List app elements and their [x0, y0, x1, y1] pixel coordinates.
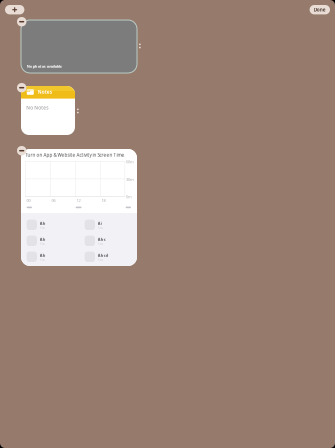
staticText: 1m — [98, 241, 103, 246]
staticText: Ab — [40, 236, 46, 242]
staticText: Ab — [40, 220, 46, 226]
button[interactable]: App usage — [85, 236, 131, 246]
button[interactable]: Add Widget — [5, 5, 24, 14]
staticText: 06 — [51, 198, 55, 203]
button[interactable]: App usage — [85, 220, 131, 230]
staticText: 18 — [101, 198, 105, 203]
button[interactable]: Turn on App & Website Activity in Screen… — [21, 149, 137, 266]
staticText: 1m — [98, 257, 103, 262]
button[interactable]: App usage — [85, 252, 131, 262]
staticText: 0m — [126, 194, 132, 199]
button[interactable]: App usage — [27, 252, 73, 262]
staticText: 30m — [126, 177, 134, 182]
staticText: Abcd — [98, 252, 109, 258]
staticText: Ab — [40, 252, 46, 258]
button[interactable]: Remove widget — [17, 146, 26, 155]
staticText: 1m — [98, 225, 103, 230]
staticText: 1m — [40, 225, 45, 230]
button[interactable]: No photos available — [21, 20, 137, 73]
staticText: Notes — [38, 89, 52, 95]
button[interactable]: Remove widget — [17, 17, 26, 26]
staticText: No photos available — [27, 64, 62, 69]
staticText: 12 — [76, 198, 80, 203]
staticText: Ai — [98, 220, 102, 226]
button[interactable]: Done — [310, 5, 330, 14]
button[interactable]: Notes — [21, 86, 75, 135]
button[interactable]: App usage — [27, 236, 73, 246]
staticText: 60m — [126, 159, 134, 164]
staticText: 00 — [26, 198, 30, 203]
button[interactable]: App usage — [27, 220, 73, 230]
button[interactable]: Resize widget — [139, 43, 141, 48]
staticText: 1m — [40, 257, 45, 262]
button[interactable]: Remove widget — [17, 83, 26, 92]
staticText: Abc — [98, 236, 106, 242]
staticText: Turn on App & Website Activity in Screen… — [25, 152, 125, 158]
staticText: 1m — [40, 241, 45, 246]
button[interactable]: Resize widget — [77, 108, 79, 113]
staticText: No Notes — [26, 104, 48, 111]
staticText: Done — [314, 6, 326, 13]
